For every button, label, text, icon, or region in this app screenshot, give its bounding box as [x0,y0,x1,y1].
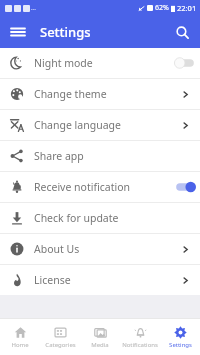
staticText: Settings [40,23,91,41]
staticText: Night mode [34,56,170,70]
button[interactable]: Check for update [0,203,200,233]
button[interactable]: Settings [160,319,200,355]
button[interactable]: License [0,265,200,295]
button[interactable]: Receive notification [0,172,200,202]
staticText: 62% [155,3,169,13]
staticText: Check for update [34,211,170,225]
staticText: 22:01 [177,3,197,13]
staticText: About Us [34,242,170,256]
staticText: Home [11,341,29,349]
button[interactable]: Categories [40,319,80,355]
button[interactable]: Toggle off [174,57,196,69]
staticText: License [34,273,170,287]
button[interactable]: Night mode [0,48,200,78]
button[interactable]: Change language [0,110,200,140]
button[interactable]: Toggle on [174,181,196,193]
button[interactable]: Search [170,20,194,44]
button[interactable]: Media [80,319,120,355]
staticText: Change theme [34,87,170,101]
staticText: Settings [169,341,192,349]
staticText: Share app [34,149,170,163]
button[interactable]: Open navigation menu [6,20,30,44]
button[interactable]: Home [0,319,40,355]
button[interactable]: About Us [0,234,200,264]
button[interactable]: Change theme [0,79,200,109]
staticText: Change language [34,118,170,132]
staticText: ... [31,4,36,12]
staticText: Categories [45,341,76,349]
staticText: Media [91,341,109,349]
button[interactable]: Notifications [120,319,160,355]
staticText: Receive notification [34,180,170,194]
staticText: Notifications [122,341,158,349]
button[interactable]: Share app [0,141,200,171]
